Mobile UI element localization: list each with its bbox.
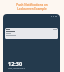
button[interactable] [5,28,58,39]
staticText: Push Notifications on Lockscreen Example [0,3,64,11]
staticText: Wed, September 2 [8,67,26,70]
staticText: 12:30 [8,60,23,67]
